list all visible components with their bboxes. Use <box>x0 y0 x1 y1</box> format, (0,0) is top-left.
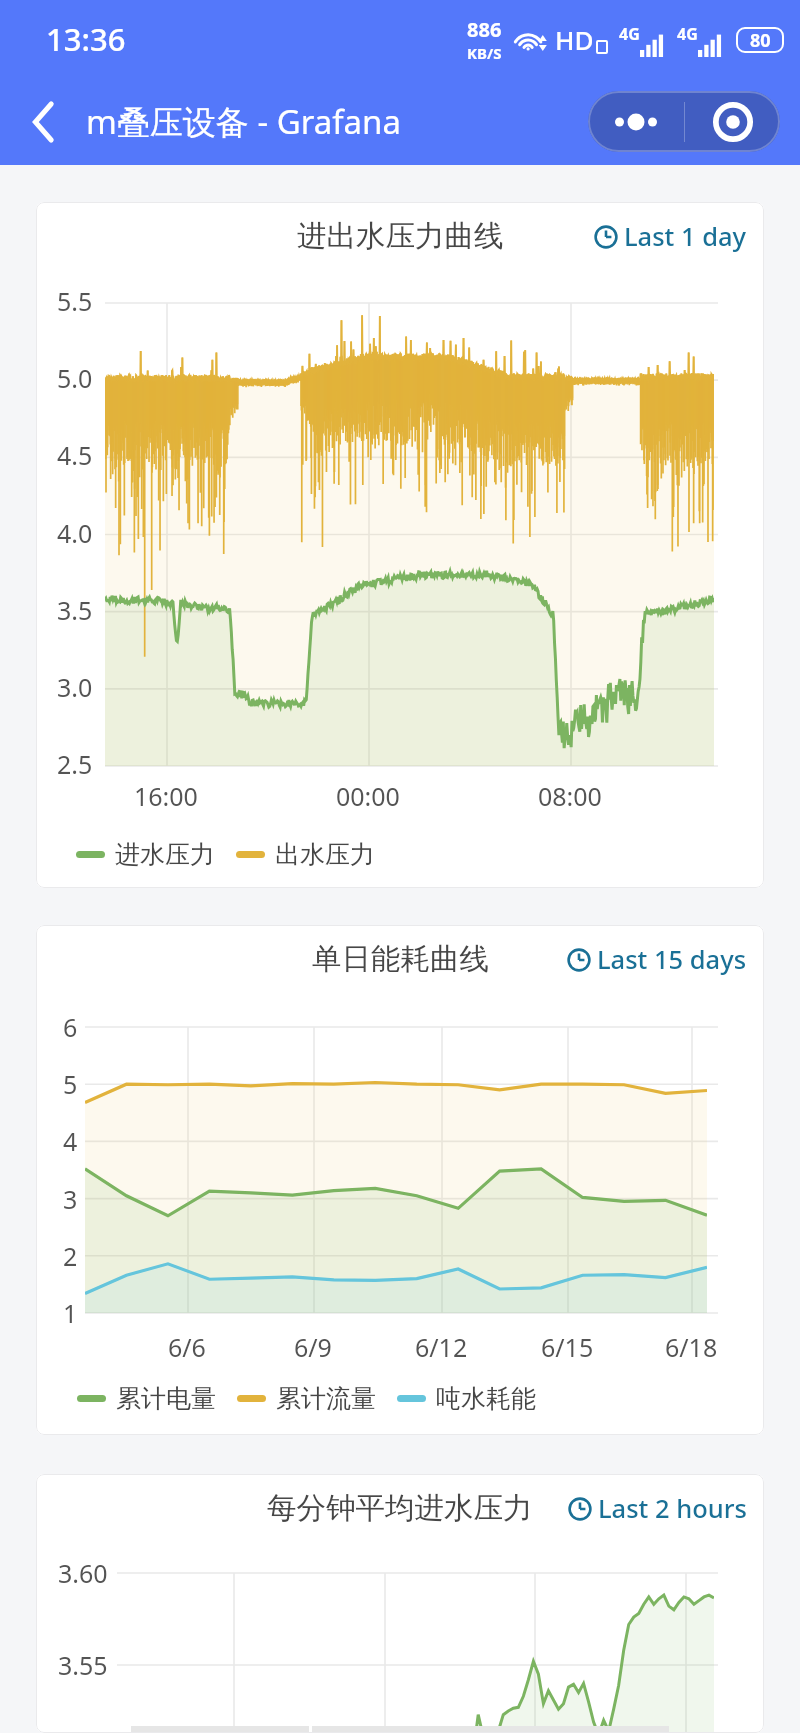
button[interactable]: 累计流量 <box>237 1383 376 1414</box>
staticText: 出水压力 <box>275 839 375 870</box>
staticText: 3.5 <box>57 593 93 627</box>
staticText: 4G <box>677 23 698 45</box>
staticText: 13:36 <box>46 18 126 60</box>
staticText: Last 15 days <box>597 942 747 977</box>
staticText: 3 <box>63 1182 78 1216</box>
button[interactable]: 进水压力 <box>76 839 215 870</box>
staticText: 2 <box>63 1239 78 1273</box>
staticText: 00:00 <box>336 779 400 813</box>
staticText: 4.5 <box>57 438 93 472</box>
staticText: 每分钟平均进水压力 <box>267 1490 533 1527</box>
staticText: 5 <box>63 1067 78 1101</box>
button[interactable]: Back <box>12 90 76 154</box>
staticText: HD <box>555 22 594 57</box>
staticText: 进水压力 <box>115 839 215 870</box>
staticText: 4.0 <box>57 516 93 550</box>
staticText: Last 1 day <box>624 219 747 254</box>
staticText: 单日能耗曲线 <box>312 941 489 978</box>
button[interactable]: More menu <box>588 91 684 152</box>
staticText: 吨水耗能 <box>436 1383 536 1414</box>
staticText: 2.5 <box>57 747 93 781</box>
button[interactable]: Last 15 days <box>567 942 747 977</box>
staticText: 6/18 <box>665 1330 718 1364</box>
staticText: 3.0 <box>57 670 93 704</box>
button[interactable]: Last 1 day <box>594 219 747 254</box>
staticText: 3.55 <box>58 1648 108 1682</box>
staticText: 累计流量 <box>276 1383 376 1414</box>
staticText: m叠压设备 - Grafana <box>86 99 401 144</box>
staticText: 4G <box>619 23 640 45</box>
button[interactable]: Last 2 hours <box>568 1491 747 1526</box>
staticText: 5.0 <box>57 361 93 395</box>
staticText: 进出水压力曲线 <box>297 218 504 255</box>
staticText: 3.60 <box>58 1556 108 1590</box>
staticText: 6/9 <box>294 1330 332 1364</box>
staticText: 6/12 <box>415 1330 468 1364</box>
button[interactable]: 出水压力 <box>236 839 375 870</box>
button[interactable]: 累计电量 <box>77 1383 216 1414</box>
staticText: 5.5 <box>57 284 93 318</box>
staticText: 6 <box>63 1010 78 1044</box>
staticText: Last 2 hours <box>598 1491 747 1526</box>
button[interactable]: Close mini program <box>685 91 780 152</box>
staticText: 4 <box>63 1124 78 1158</box>
button[interactable]: 吨水耗能 <box>397 1383 536 1414</box>
staticText: 1 <box>63 1296 78 1330</box>
staticText: 08:00 <box>538 779 602 813</box>
staticText: 累计电量 <box>116 1383 216 1414</box>
staticText: 6/15 <box>541 1330 594 1364</box>
staticText: 886 <box>467 16 502 43</box>
staticText: 16:00 <box>134 779 198 813</box>
staticText: KB/S <box>467 43 502 63</box>
staticText: 6/6 <box>168 1330 206 1364</box>
staticText: 80 <box>750 28 771 53</box>
